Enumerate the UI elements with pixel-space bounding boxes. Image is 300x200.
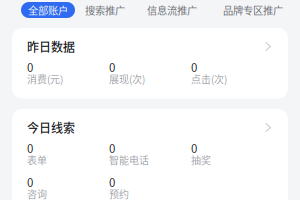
staticText: 消费(元) — [27, 72, 63, 86]
staticText: 点击(次) — [191, 72, 227, 86]
staticText: 预约 — [109, 187, 129, 200]
staticText: 0 — [191, 59, 197, 75]
button[interactable]: 搜索推广 — [75, 5, 125, 14]
staticText: 展现(次) — [109, 72, 145, 86]
staticText: 品牌专区推广 — [223, 3, 283, 17]
button[interactable]: 昨日数据 — [27, 41, 273, 51]
staticText: 0 — [191, 140, 197, 156]
button[interactable]: 今日线索 — [27, 122, 273, 132]
staticText: 信息流推广 — [147, 3, 197, 17]
staticText: 0 — [27, 59, 33, 75]
staticText: 全部账户 — [28, 3, 68, 17]
staticText: 今日线索 — [27, 119, 75, 136]
button[interactable]: 品牌专区推广 — [197, 5, 283, 14]
staticText: 0 — [27, 140, 33, 156]
staticText: 0 — [109, 140, 115, 156]
button[interactable]: 全部账户 — [0, 2, 75, 18]
staticText: 0 — [109, 59, 115, 75]
staticText: 昨日数据 — [27, 38, 75, 55]
staticText: 0 — [27, 174, 33, 190]
button[interactable]: 信息流推广 — [125, 5, 197, 14]
staticText: 表单 — [27, 153, 47, 167]
staticText: 咨询 — [27, 187, 47, 200]
staticText: 0 — [109, 174, 115, 190]
staticText: 抽奖 — [191, 153, 211, 167]
staticText: 搜索推广 — [85, 3, 125, 17]
staticText: 智能电话 — [109, 153, 149, 167]
